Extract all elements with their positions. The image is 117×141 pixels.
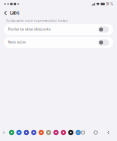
button[interactable]: Mail xyxy=(24,130,29,135)
button[interactable]: Gallery xyxy=(61,130,66,135)
button[interactable]: WhatsApp xyxy=(9,130,14,135)
button[interactable]: Calendar xyxy=(31,130,36,135)
button[interactable]: Herní režim xyxy=(4,37,113,48)
button[interactable]: Messenger xyxy=(16,130,22,135)
button[interactable]: Camera xyxy=(68,130,73,135)
staticText: Posílat na okraj obrazovky xyxy=(8,28,51,31)
staticText: Vyzkoušejte nové experimentální funkce xyxy=(6,19,68,23)
button[interactable]: Back xyxy=(1,8,10,18)
staticText: 18 % xyxy=(106,2,113,6)
button[interactable]: Maps xyxy=(75,130,81,135)
button[interactable]: Recent apps xyxy=(81,128,85,136)
button[interactable]: Back xyxy=(106,128,110,136)
button[interactable]: Posílat na okraj obrazovky xyxy=(4,24,113,35)
button[interactable]: Photos xyxy=(46,130,51,135)
staticText: Herní režim xyxy=(8,41,26,44)
button[interactable]: Music xyxy=(53,130,59,135)
button[interactable]: Home xyxy=(94,128,98,136)
button[interactable]: Browser xyxy=(39,130,44,135)
staticText: Labs xyxy=(10,10,19,16)
